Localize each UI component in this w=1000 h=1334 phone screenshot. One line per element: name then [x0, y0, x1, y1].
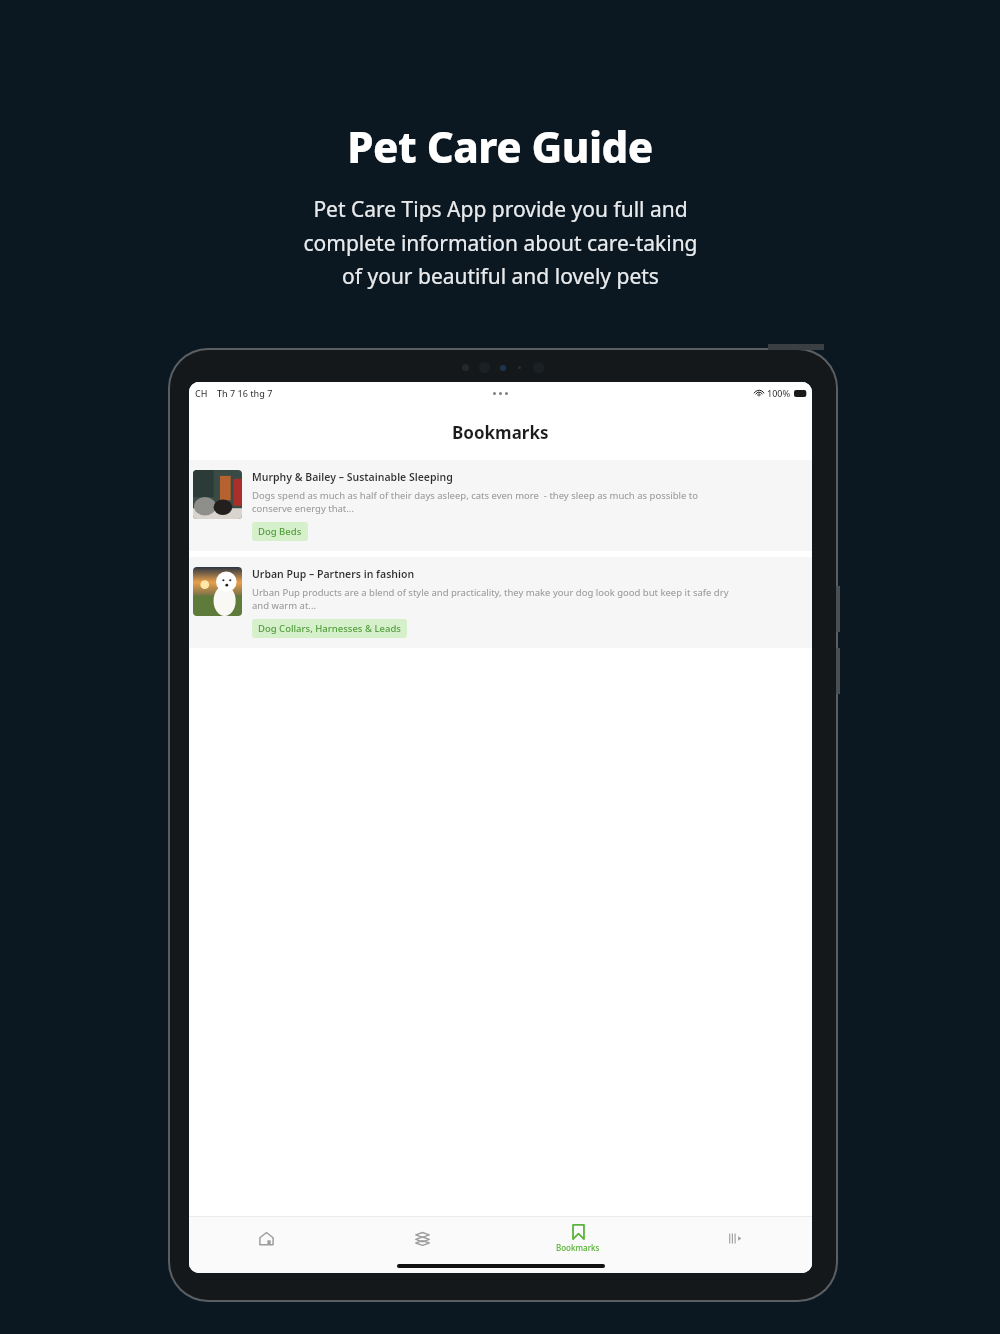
staticText: Urban Pup products are a blend of style …: [252, 586, 729, 612]
staticText: Urban Pup – Partners in fashion: [252, 567, 415, 581]
button[interactable]: Categories: [344, 1217, 500, 1259]
button[interactable]: Bookmarks: [500, 1217, 656, 1259]
button[interactable]: Home: [189, 1217, 344, 1259]
button[interactable]: More: [656, 1217, 812, 1259]
staticText: Murphy & Bailey – Sustainable Sleeping: [252, 470, 453, 484]
staticText: Bookmarks: [452, 421, 549, 444]
button[interactable]: Dog Beds: [252, 522, 308, 541]
staticText: Bookmarks: [556, 1242, 600, 1253]
button[interactable]: Urban Pup – Partners in fashion: [189, 557, 812, 648]
staticText: Dog Collars, Harnesses & Leads: [258, 622, 401, 635]
button[interactable]: Dog Collars, Harnesses & Leads: [252, 619, 407, 638]
staticText: Pet Care Guide: [347, 118, 653, 175]
staticText: Th 7 16 thg 7: [217, 387, 273, 399]
staticText: Dog Beds: [258, 525, 302, 538]
staticText: 100%: [767, 387, 791, 399]
staticText: CH: [195, 387, 208, 399]
staticText: Dogs spend as much as half of their days…: [252, 489, 698, 515]
button[interactable]: Murphy & Bailey – Sustainable Sleeping: [189, 460, 812, 551]
staticText: Pet Care Tips App provide you full and c…: [303, 195, 698, 290]
